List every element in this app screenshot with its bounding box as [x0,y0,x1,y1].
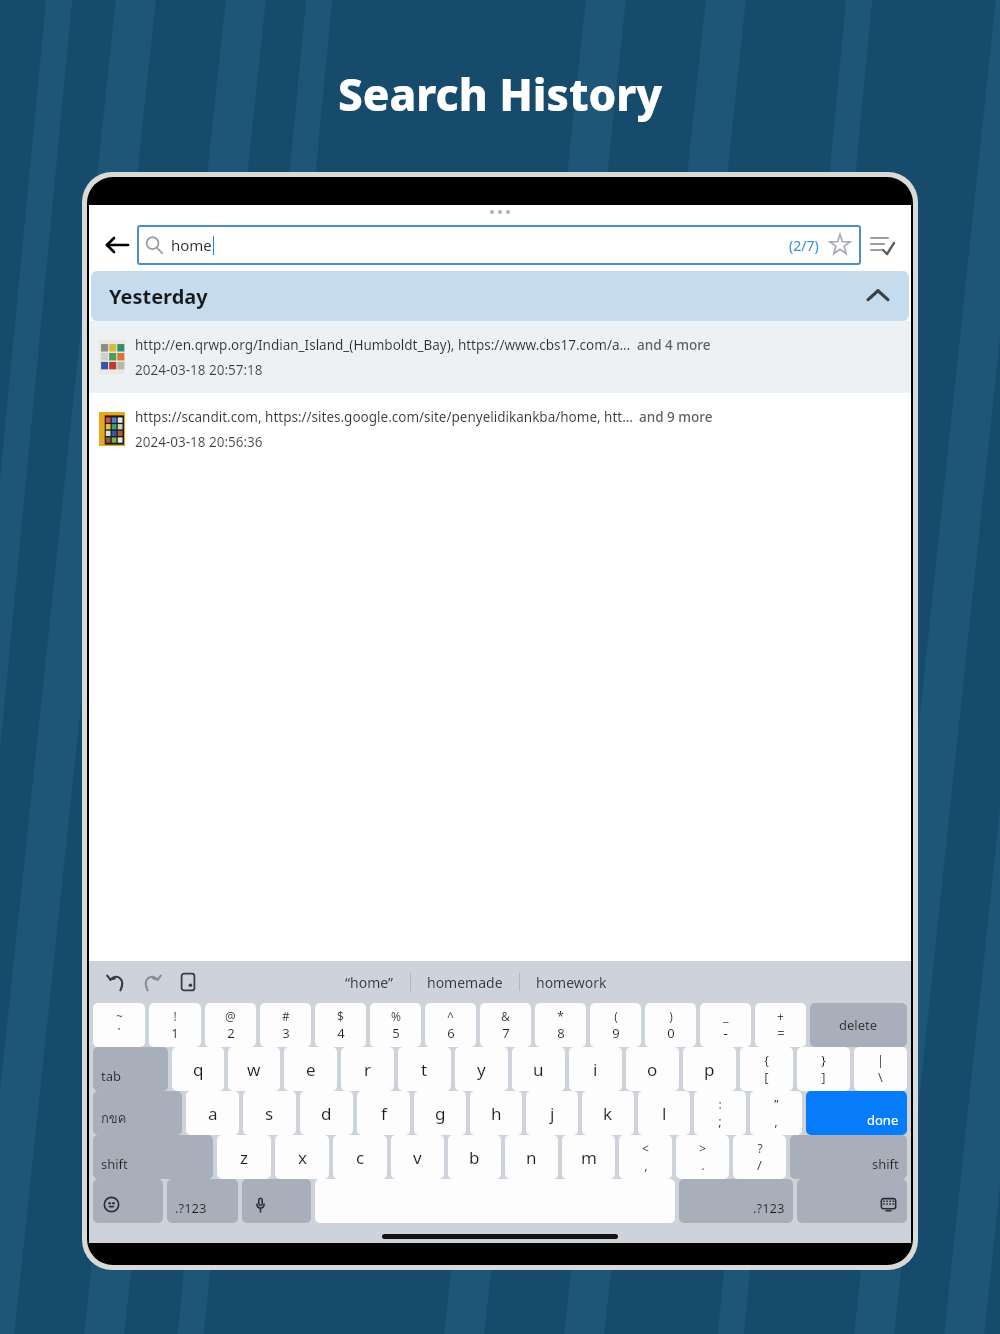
button[interactable]: j [526,1091,578,1135]
staticText: % [391,1008,401,1024]
button[interactable]: # [260,1003,311,1047]
staticText: f [381,1102,387,1125]
button[interactable]: shift [93,1135,213,1179]
button[interactable]: < [619,1135,672,1179]
staticText: z [240,1146,248,1169]
button[interactable]: ( [590,1003,641,1047]
button[interactable]: o [626,1047,679,1091]
button[interactable]: n [505,1135,558,1179]
button[interactable]: Bookmark [827,232,853,258]
button[interactable]: & [480,1003,531,1047]
staticText: t [421,1058,428,1081]
button[interactable]: Voice input [242,1179,311,1223]
button[interactable]: homemade [411,969,519,996]
staticText: c [356,1146,365,1169]
button[interactable]: g [414,1091,466,1135]
button[interactable]: Paste [173,967,203,997]
button[interactable]: } [797,1047,850,1091]
button[interactable]: ? [733,1135,786,1179]
button[interactable]: @ [205,1003,256,1047]
button[interactable]: k [582,1091,634,1135]
staticText: v [413,1146,422,1169]
button[interactable]: Redo [137,967,167,997]
button[interactable]: ! [149,1003,201,1047]
button[interactable]: t [398,1047,451,1091]
staticText: 7 [502,1024,510,1042]
staticText: e [306,1058,316,1081]
button[interactable]: r [341,1047,394,1091]
button[interactable]: p [683,1047,736,1091]
button[interactable]: c [333,1135,387,1179]
staticText: s [265,1102,274,1125]
staticText: .?123 [175,1199,207,1217]
staticText: 3 [282,1024,290,1042]
button[interactable]: Back [97,225,137,265]
button[interactable]: y [455,1047,508,1091]
button[interactable]: { [740,1047,793,1091]
staticText: homemade [427,973,503,992]
staticText: * [557,1008,564,1024]
button[interactable]: $ [315,1003,366,1047]
button[interactable]: u [512,1047,565,1091]
button[interactable]: b [448,1135,501,1179]
button[interactable]: z [217,1135,271,1179]
button[interactable]: * [535,1003,586,1047]
staticText: a [208,1102,218,1125]
button[interactable]: http://en.qrwp.org/Indian_Island_(Humbol… [89,321,911,393]
staticText: 2024-03-18 20:56:36 [135,433,263,451]
button[interactable]: ” [750,1091,802,1135]
button[interactable]: delete [810,1003,907,1047]
button[interactable]: ~ [93,1003,145,1047]
button[interactable]: ) [645,1003,696,1047]
button[interactable]: x [275,1135,329,1179]
button[interactable]: home [137,225,861,265]
staticText: 9 [612,1024,620,1042]
staticText: shift [101,1155,128,1173]
button[interactable]: % [370,1003,421,1047]
staticText: q [193,1058,204,1081]
button[interactable]: : [694,1091,746,1135]
staticText: i [593,1058,598,1081]
button[interactable]: homework [520,969,623,996]
button[interactable]: d [300,1091,353,1135]
button[interactable]: Emoji [93,1179,163,1223]
button[interactable]: > [676,1135,729,1179]
button[interactable]: s [243,1091,296,1135]
button[interactable]: + [755,1003,806,1047]
button[interactable]: Yesterday [91,271,909,321]
staticText: home [171,235,212,255]
button[interactable]: “home” [329,969,410,996]
button[interactable]: f [357,1091,410,1135]
staticText: < [642,1140,649,1156]
button[interactable]: l [638,1091,690,1135]
button[interactable]: tab [93,1047,168,1091]
button[interactable]: h [470,1091,522,1135]
button[interactable]: Hide keyboard [797,1179,907,1223]
button[interactable]: done [806,1091,907,1135]
staticText: y [477,1058,486,1081]
button[interactable]: q [172,1047,224,1091]
button[interactable]: _ [700,1003,751,1047]
button[interactable]: | [854,1047,907,1091]
staticText: > [699,1140,706,1156]
staticText: + [777,1008,784,1024]
button[interactable]: a [186,1091,239,1135]
button[interactable]: .?123 [679,1179,793,1223]
button[interactable]: Undo [101,967,131,997]
staticText: ^ [447,1008,454,1024]
staticText: ] [821,1068,826,1086]
button[interactable]: ^ [425,1003,476,1047]
button[interactable]: i [569,1047,622,1091]
button[interactable]: Select all [861,224,903,266]
button[interactable]: m [562,1135,615,1179]
button[interactable]: กขค [93,1091,182,1135]
button[interactable]: e [284,1047,337,1091]
staticText: and 9 more [639,408,713,426]
staticText: u [533,1058,544,1081]
button[interactable]: w [228,1047,280,1091]
button[interactable]: v [391,1135,444,1179]
button[interactable]: shift [790,1135,907,1179]
button[interactable]: https://scandit.com, https://sites.googl… [89,393,911,465]
button[interactable]: .?123 [167,1179,238,1223]
